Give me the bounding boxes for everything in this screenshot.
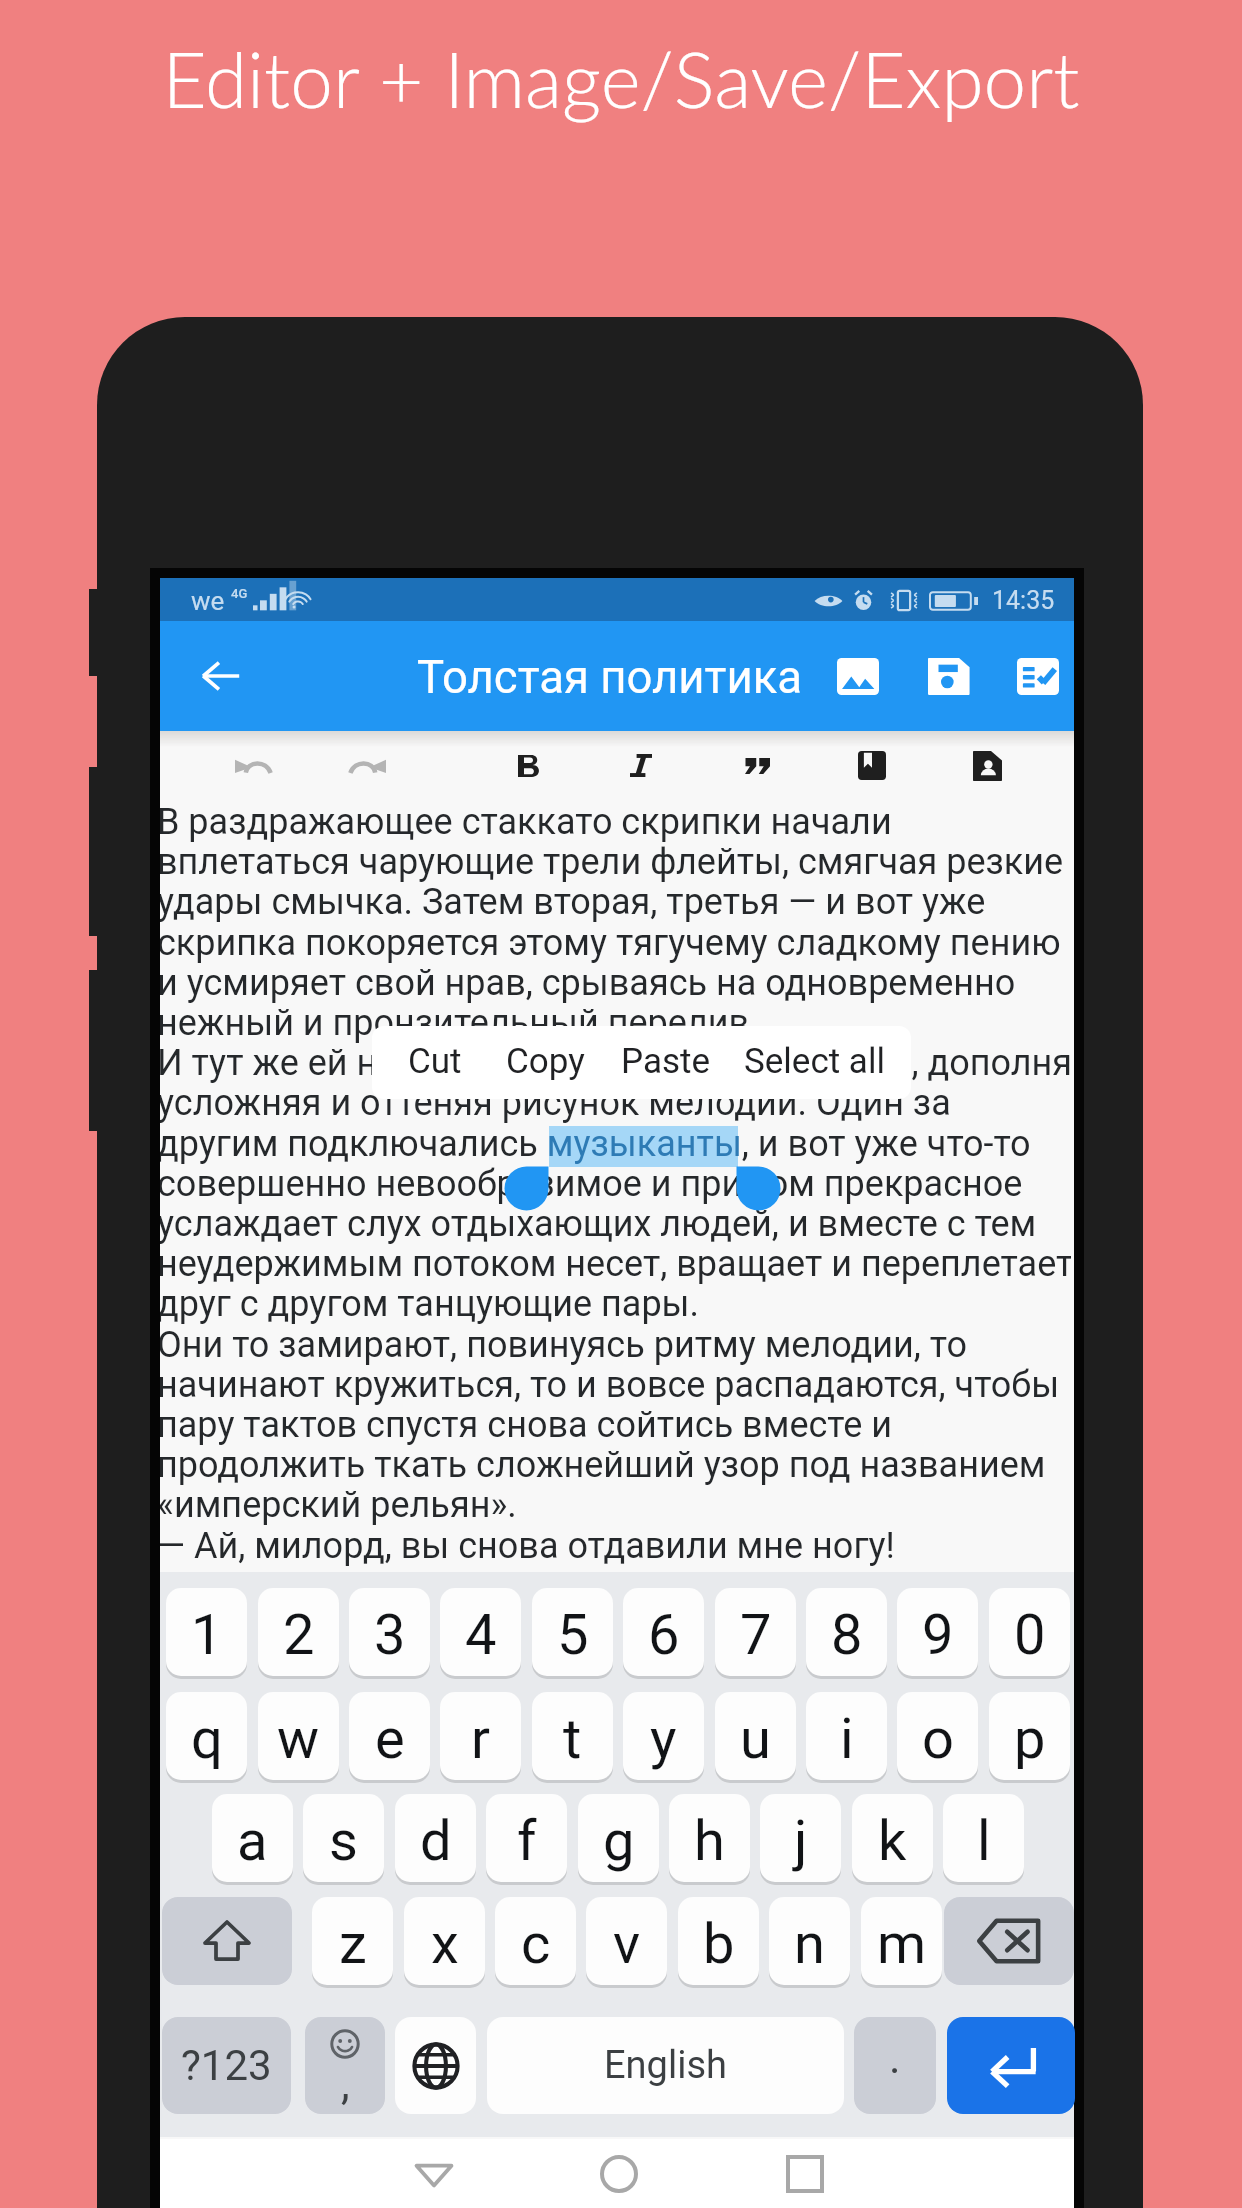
button[interactable]: Undo xyxy=(211,731,295,800)
staticText: m xyxy=(877,1911,927,1977)
staticText: Paste xyxy=(621,1041,711,1082)
staticText: a xyxy=(237,1808,268,1874)
button[interactable]: Back xyxy=(184,640,256,712)
button[interactable]: Insert image xyxy=(816,634,900,718)
button[interactable]: j xyxy=(760,1794,841,1882)
button[interactable]: Copy xyxy=(484,1026,607,1096)
button[interactable]: Shift xyxy=(162,1897,292,1985)
button[interactable]: 6 xyxy=(623,1588,704,1676)
staticText: g xyxy=(603,1808,635,1874)
button[interactable]: y xyxy=(623,1692,704,1780)
button[interactable]: Redo xyxy=(326,731,410,800)
button[interactable]: t xyxy=(532,1692,613,1780)
staticText: q xyxy=(191,1706,223,1772)
staticText: b xyxy=(703,1911,735,1977)
staticText: z xyxy=(339,1911,367,1977)
button[interactable]: Cut xyxy=(386,1026,484,1096)
button[interactable]: Home xyxy=(564,2139,674,2208)
button[interactable]: Contact xyxy=(945,731,1029,800)
button[interactable]: l xyxy=(943,1794,1024,1882)
button[interactable]: Back xyxy=(379,2139,489,2208)
staticText: вплетаться чарующие трели флейты, смягча… xyxy=(160,841,1064,883)
staticText: Editor + Image/Save/Export xyxy=(162,32,1080,124)
staticText: d xyxy=(420,1808,452,1874)
button[interactable]: q xyxy=(166,1692,247,1780)
button[interactable]: f xyxy=(486,1794,567,1882)
button[interactable]: 9 xyxy=(897,1588,978,1676)
button[interactable]: 1 xyxy=(166,1588,247,1676)
button[interactable]: x xyxy=(404,1897,485,1985)
staticText: Они то замирают, повинуясь ритму мелодии… xyxy=(160,1324,967,1366)
staticText: И тут же ей навстречу полилась виолончел… xyxy=(160,1042,1071,1084)
button[interactable]: ?123 xyxy=(162,2017,291,2114)
button[interactable]: Export xyxy=(996,634,1080,718)
button[interactable]: 2 xyxy=(258,1588,339,1676)
button[interactable]: a xyxy=(212,1794,293,1882)
button[interactable]: Select all xyxy=(722,1026,907,1096)
button[interactable]: Change language xyxy=(395,2017,476,2114)
button[interactable]: Recents xyxy=(750,2139,860,2208)
button[interactable]: s xyxy=(303,1794,384,1882)
staticText: Толстая политика xyxy=(417,651,803,704)
staticText: усложняя и оттеняя рисунок мелодии. Один… xyxy=(160,1082,951,1124)
button[interactable]: 3 xyxy=(349,1588,430,1676)
staticText: j xyxy=(794,1808,808,1874)
button[interactable]: o xyxy=(897,1692,978,1780)
button[interactable]: . xyxy=(854,2017,936,2114)
staticText: t xyxy=(563,1706,582,1772)
button[interactable]: Emoji and comma xyxy=(305,2017,385,2114)
staticText: w xyxy=(277,1706,320,1772)
button[interactable]: u xyxy=(715,1692,796,1780)
staticText: друг с другом танцующие пары. xyxy=(160,1283,700,1325)
button[interactable]: r xyxy=(440,1692,521,1780)
button[interactable]: k xyxy=(852,1794,933,1882)
staticText: f xyxy=(517,1808,537,1874)
button[interactable]: Paste xyxy=(599,1026,733,1096)
staticText: s xyxy=(329,1808,358,1874)
staticText: услаждает слух отдыхающих людей, и вмест… xyxy=(160,1203,1037,1245)
button[interactable]: Bookmark xyxy=(830,731,914,800)
button[interactable]: Quote xyxy=(715,731,799,800)
button[interactable]: w xyxy=(258,1692,339,1780)
staticText: y xyxy=(650,1706,677,1772)
button[interactable]: Bold xyxy=(486,731,570,800)
button[interactable]: 7 xyxy=(715,1588,796,1676)
button[interactable]: z xyxy=(312,1897,393,1985)
button[interactable]: e xyxy=(349,1692,430,1780)
button[interactable]: n xyxy=(769,1897,850,1985)
button[interactable]: v xyxy=(586,1897,667,1985)
staticText: ?123 xyxy=(181,2041,272,2090)
staticText: x xyxy=(431,1911,459,1977)
button[interactable]: i xyxy=(806,1692,887,1780)
staticText: i xyxy=(840,1706,854,1772)
button[interactable]: 8 xyxy=(806,1588,887,1676)
button[interactable]: d xyxy=(395,1794,476,1882)
button[interactable]: m xyxy=(861,1897,942,1985)
button[interactable]: 4 xyxy=(440,1588,521,1676)
button[interactable]: g xyxy=(578,1794,659,1882)
button[interactable]: p xyxy=(989,1692,1070,1780)
staticText: совершенно невообразимое и при том прекр… xyxy=(160,1163,1023,1205)
staticText: 3 xyxy=(374,1602,406,1668)
staticText: 2 xyxy=(283,1602,315,1668)
staticText: 5 xyxy=(557,1602,589,1668)
staticText: c xyxy=(521,1911,551,1977)
button[interactable]: 5 xyxy=(532,1588,613,1676)
button[interactable]: English xyxy=(487,2017,844,2114)
button[interactable]: Italic xyxy=(599,731,683,800)
staticText: Cut xyxy=(408,1041,462,1082)
staticText: «имперский рельян». xyxy=(160,1484,517,1526)
staticText: 0 xyxy=(1014,1602,1046,1668)
button[interactable]: c xyxy=(495,1897,576,1985)
staticText: 8 xyxy=(831,1602,863,1668)
staticText: o xyxy=(922,1706,954,1772)
staticText: 9 xyxy=(922,1602,954,1668)
button[interactable]: Save xyxy=(907,634,991,718)
button[interactable]: Backspace xyxy=(944,1897,1074,1985)
button[interactable]: h xyxy=(669,1794,750,1882)
button[interactable]: b xyxy=(678,1897,759,1985)
button[interactable]: Enter xyxy=(947,2017,1075,2114)
staticText: — Ай, милорд, вы снова отдавили мне ногу… xyxy=(160,1525,895,1567)
staticText: другим подключались музыканты, и вот уже… xyxy=(160,1123,1031,1165)
button[interactable]: 0 xyxy=(989,1588,1070,1676)
